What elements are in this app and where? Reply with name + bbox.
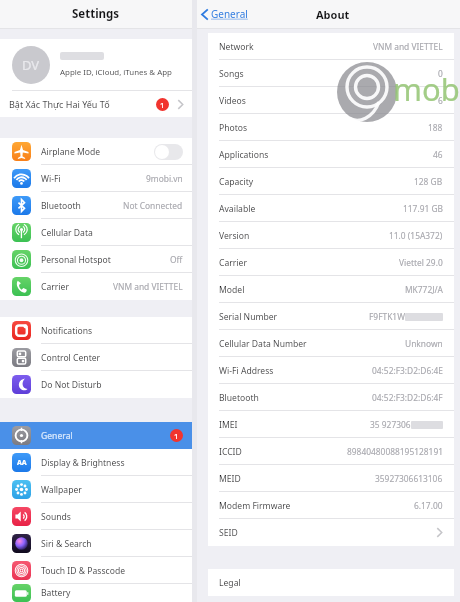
- staticText: 9mobi.vn: [146, 173, 183, 184]
- staticText: 188: [428, 122, 443, 133]
- button[interactable]: Serial Number: [208, 303, 454, 330]
- staticText: VNM and VIETTEL: [373, 41, 443, 52]
- button[interactable]: Version: [208, 222, 454, 249]
- staticText: Model: [219, 284, 405, 296]
- staticText: 35927306613106: [375, 473, 443, 484]
- button[interactable]: Siri & Search: [0, 530, 192, 557]
- button[interactable]: Network: [208, 33, 454, 60]
- button[interactable]: Carrier: [208, 249, 454, 276]
- staticText: Personal Hotspot: [41, 254, 170, 266]
- staticText: SEID: [219, 527, 436, 539]
- button[interactable]: Model: [208, 276, 454, 303]
- staticText: ICCID: [219, 446, 347, 458]
- button[interactable]: Wi-Fi: [0, 165, 192, 192]
- button[interactable]: MEID: [208, 465, 454, 492]
- button[interactable]: Cellular Data Number: [208, 330, 454, 357]
- staticText: Not Connected: [123, 200, 183, 211]
- button[interactable]: Toggle Airplane Mode: [154, 144, 183, 160]
- staticText: Apple ID, iCloud, iTunes & App Store: [60, 67, 183, 78]
- staticText: Unknown: [405, 338, 443, 349]
- staticText: Capacity: [219, 176, 414, 188]
- button[interactable]: Notifications: [0, 317, 192, 344]
- staticText: Bluetooth: [41, 200, 123, 212]
- button[interactable]: Applications: [208, 141, 454, 168]
- staticText: Sounds: [41, 511, 183, 523]
- staticText: Cellular Data: [41, 227, 183, 239]
- staticText: Settings: [72, 6, 120, 22]
- staticText: 89840480088195128191: [347, 446, 443, 457]
- button[interactable]: Touch ID & Passcode: [0, 557, 192, 584]
- button[interactable]: Songs: [208, 60, 454, 87]
- button[interactable]: Bật Xác Thực Hai Yếu Tố: [0, 91, 192, 117]
- staticText: Bật Xác Thực Hai Yếu Tố: [9, 98, 156, 110]
- button[interactable]: Personal Hotspot: [0, 246, 192, 273]
- button[interactable]: Bluetooth: [208, 384, 454, 411]
- button[interactable]: General: [201, 7, 248, 21]
- staticText: Wi-Fi Address: [219, 365, 372, 377]
- button[interactable]: SEID: [208, 519, 454, 546]
- staticText: Display & Brightness: [41, 457, 183, 469]
- staticText: Applications: [219, 149, 433, 161]
- button[interactable]: ICCID: [208, 438, 454, 465]
- staticText: Notifications: [41, 325, 183, 337]
- staticText: Carrier: [41, 281, 113, 293]
- button[interactable]: Wallpaper: [0, 476, 192, 503]
- staticText: Available: [219, 203, 403, 215]
- staticText: VNM and VIETTEL: [113, 281, 183, 292]
- staticText: 6.17.00: [414, 500, 443, 511]
- button[interactable]: Videos: [208, 87, 454, 114]
- staticText: 1: [174, 431, 179, 441]
- staticText: AA: [17, 458, 27, 468]
- staticText: Off: [170, 254, 183, 265]
- button[interactable]: Wi-Fi Address: [208, 357, 454, 384]
- staticText: Airplane Mode: [41, 146, 154, 158]
- staticText: 117.91 GB: [403, 203, 443, 214]
- staticText: Serial Number: [219, 311, 369, 323]
- staticText: Viettel 29.0: [399, 257, 443, 268]
- staticText: Touch ID & Passcode: [41, 565, 183, 577]
- staticText: Legal: [219, 577, 443, 589]
- button[interactable]: DV: [0, 39, 192, 90]
- staticText: 0: [438, 68, 443, 79]
- staticText: Version: [219, 230, 389, 242]
- staticText: Carrier: [219, 257, 399, 269]
- staticText: 1: [160, 100, 165, 110]
- button[interactable]: IMEI: [208, 411, 454, 438]
- button[interactable]: Modem Firmware: [208, 492, 454, 519]
- button[interactable]: Airplane Mode: [0, 138, 192, 165]
- staticText: Photos: [219, 122, 428, 134]
- staticText: Battery: [41, 587, 183, 599]
- staticText: Control Center: [41, 352, 183, 364]
- staticText: 04:52:F3:D2:D6:4F: [372, 392, 443, 403]
- button[interactable]: Available: [208, 195, 454, 222]
- button[interactable]: Do Not Disturb: [0, 371, 192, 398]
- staticText: General: [211, 7, 248, 21]
- button[interactable]: Sounds: [0, 503, 192, 530]
- staticText: F9FTK1W: [369, 311, 405, 322]
- staticText: Videos: [219, 95, 438, 107]
- button[interactable]: Battery: [0, 584, 192, 602]
- staticText: 46: [433, 149, 443, 160]
- staticText: 35 927306: [370, 419, 411, 430]
- staticText: Bluetooth: [219, 392, 372, 404]
- button[interactable]: Carrier: [0, 273, 192, 300]
- staticText: Cellular Data Number: [219, 338, 405, 350]
- button[interactable]: General: [0, 422, 192, 449]
- button[interactable]: AA: [0, 449, 192, 476]
- button[interactable]: Cellular Data: [0, 219, 192, 246]
- button[interactable]: Bluetooth: [0, 192, 192, 219]
- staticText: About: [316, 7, 350, 22]
- staticText: MK772J/A: [405, 284, 443, 295]
- staticText: Wi-Fi: [41, 173, 146, 185]
- button[interactable]: Legal: [208, 569, 454, 596]
- button[interactable]: Capacity: [208, 168, 454, 195]
- button[interactable]: Photos: [208, 114, 454, 141]
- staticText: Do Not Disturb: [41, 379, 183, 391]
- staticText: Wallpaper: [41, 484, 183, 496]
- staticText: DV: [22, 56, 40, 74]
- staticText: Siri & Search: [41, 538, 183, 550]
- staticText: 11.0 (15A372): [389, 230, 443, 241]
- button[interactable]: Control Center: [0, 344, 192, 371]
- staticText: IMEI: [219, 419, 370, 431]
- staticText: Network: [219, 41, 373, 53]
